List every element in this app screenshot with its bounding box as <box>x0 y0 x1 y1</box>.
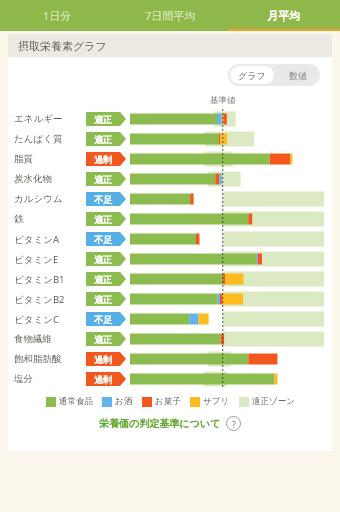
staticText: 適正 <box>94 114 112 125</box>
staticText: 1日分 <box>43 8 72 23</box>
button[interactable]: 炭水化物 <box>14 169 324 189</box>
button[interactable]: 飽和脂肪酸 <box>14 349 324 369</box>
button[interactable]: 7日間平均 <box>114 0 227 31</box>
button[interactable]: たんぱく質 <box>14 129 324 149</box>
button[interactable]: 栄養価の判定基準について <box>8 416 332 431</box>
staticText: グラフ <box>238 70 266 81</box>
button[interactable]: ビタミンA <box>14 229 324 249</box>
staticText: お菓子 <box>155 396 181 407</box>
button[interactable]: 食物繊維 <box>14 329 324 349</box>
staticText: 数値 <box>289 70 307 81</box>
button[interactable]: グラフ <box>230 66 274 84</box>
staticText: 摂取栄養素グラフ <box>18 39 107 53</box>
staticText: ? <box>232 418 236 430</box>
staticText: ビタミンB2 <box>14 293 65 306</box>
staticText: 不足 <box>94 314 112 325</box>
staticText: 適正 <box>94 134 112 145</box>
staticText: お酒 <box>115 396 133 407</box>
staticText: ビタミンC <box>14 313 59 326</box>
staticText: 不足 <box>94 234 112 245</box>
staticText: 月平均 <box>267 9 300 23</box>
staticText: ビタミンA <box>14 233 59 246</box>
staticText: 飽和脂肪酸 <box>14 353 62 365</box>
staticText: 通常食品 <box>59 396 93 407</box>
staticText: 炭水化物 <box>14 173 52 185</box>
staticText: ビタミンE <box>14 253 59 266</box>
staticText: 栄養価の判定基準について <box>99 417 221 430</box>
staticText: 過剰 <box>94 154 112 165</box>
button[interactable]: 鉄 <box>14 209 324 229</box>
staticText: 適正 <box>94 254 112 265</box>
button[interactable]: ビタミンC <box>14 309 324 329</box>
staticText: 過剰 <box>94 374 112 385</box>
button[interactable]: ビタミンB1 <box>14 269 324 289</box>
other: ヘルプ <box>226 416 241 431</box>
button[interactable]: 脂質 <box>14 149 324 169</box>
staticText: 塩分 <box>14 373 33 385</box>
staticText: カルシウム <box>14 193 63 205</box>
staticText: 適正 <box>94 274 112 285</box>
button[interactable]: ビタミンE <box>14 249 324 269</box>
button[interactable]: 1日分 <box>0 0 114 31</box>
staticText: 基準値 <box>210 95 236 106</box>
staticText: 食物繊維 <box>14 333 52 345</box>
button[interactable]: 月平均 <box>227 0 340 31</box>
staticText: 7日間平均 <box>145 8 196 23</box>
button[interactable]: 塩分 <box>14 369 324 389</box>
staticText: 脂質 <box>14 153 33 165</box>
staticText: 適正 <box>94 174 112 185</box>
staticText: 過剰 <box>94 354 112 365</box>
staticText: 適正ゾーン <box>252 396 295 407</box>
staticText: 適正 <box>94 334 112 345</box>
staticText: 鉄 <box>14 213 24 225</box>
button[interactable]: エネルギー <box>14 109 324 129</box>
staticText: エネルギー <box>14 113 63 125</box>
staticText: ビタミンB1 <box>14 273 65 286</box>
staticText: 不足 <box>94 194 112 205</box>
staticText: たんぱく質 <box>14 133 63 145</box>
button[interactable]: 数値 <box>276 64 320 86</box>
button[interactable]: カルシウム <box>14 189 324 209</box>
staticText: サプリ <box>203 396 230 407</box>
staticText: 適正 <box>94 294 112 305</box>
staticText: 適正 <box>94 214 112 225</box>
button[interactable]: ビタミンB2 <box>14 289 324 309</box>
